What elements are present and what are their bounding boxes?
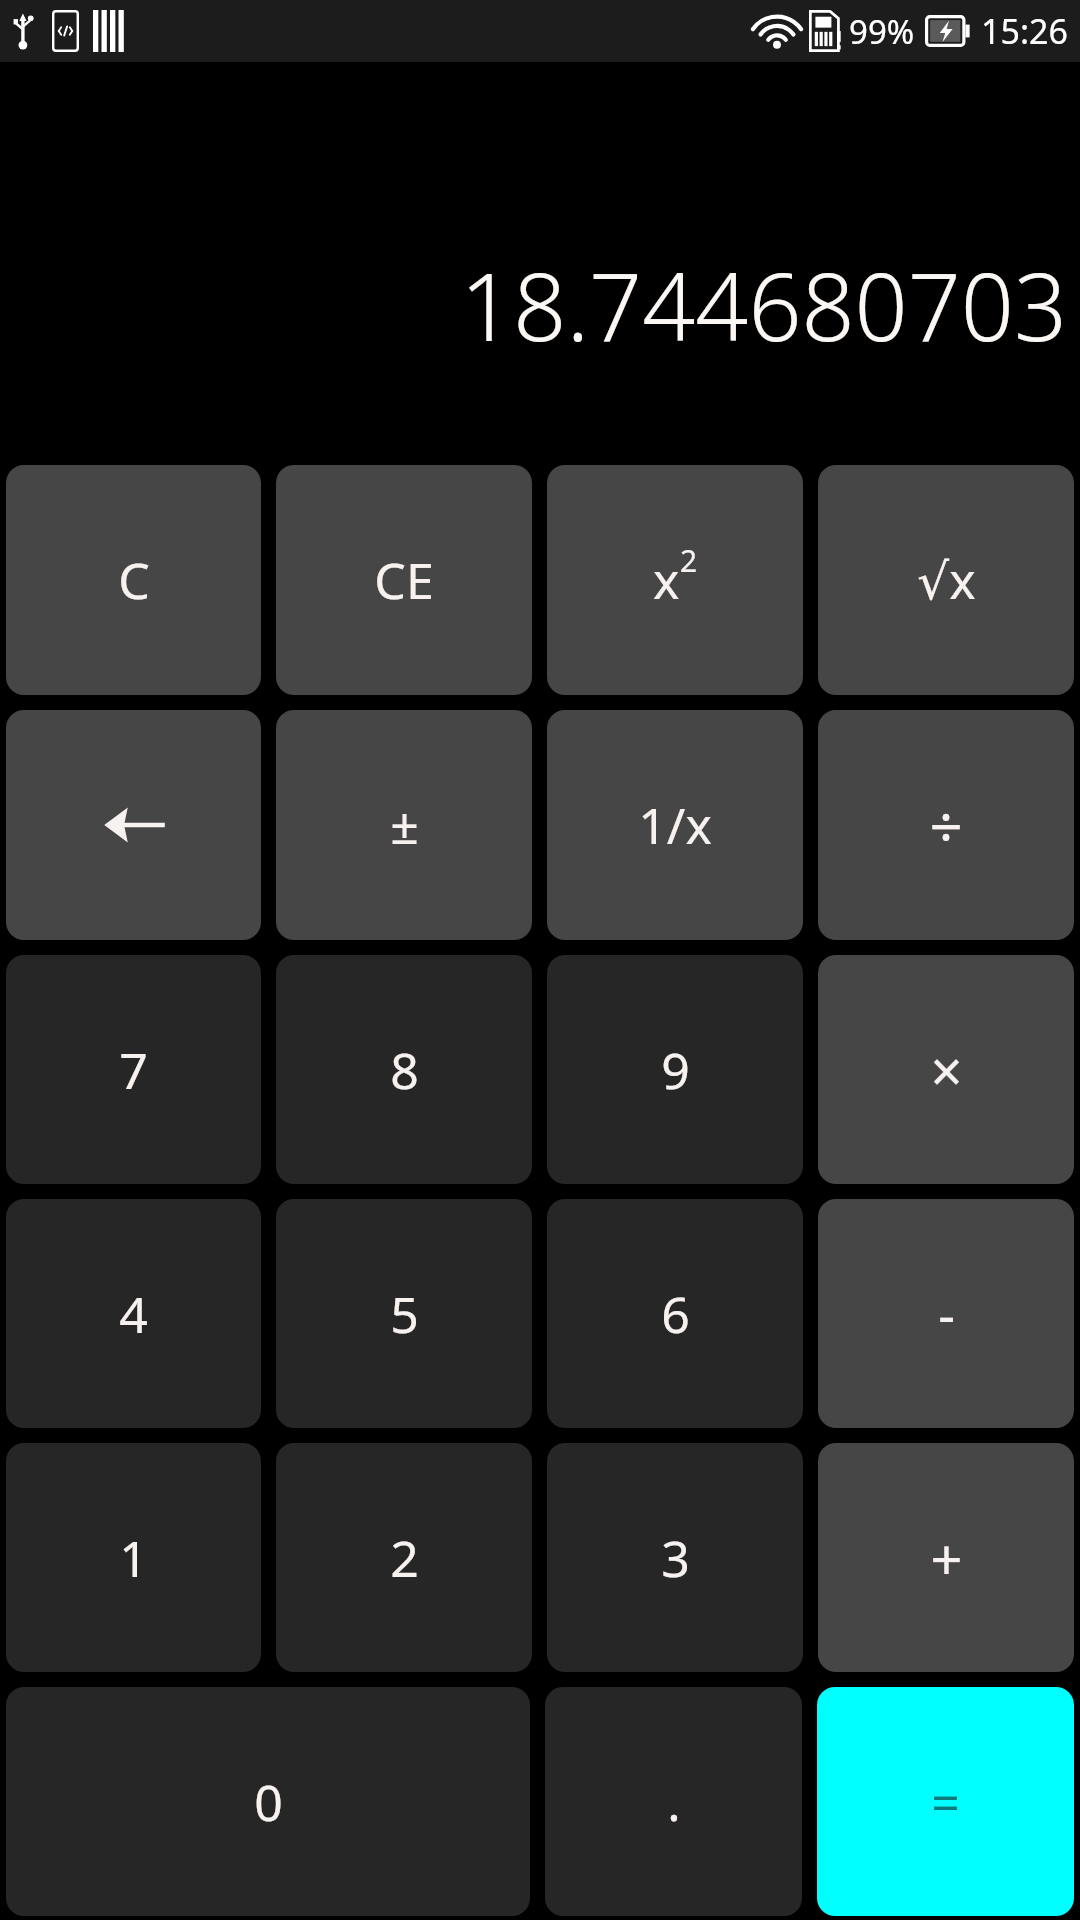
- button[interactable]: C: [6, 465, 261, 695]
- button[interactable]: ×: [818, 955, 1074, 1184]
- button[interactable]: =: [817, 1687, 1074, 1916]
- staticText: 1/x: [638, 791, 712, 859]
- staticText: 6: [661, 1280, 690, 1348]
- staticText: 18.744680703: [460, 242, 1067, 369]
- button[interactable]: ÷: [818, 710, 1074, 940]
- button[interactable]: 1/x: [547, 710, 803, 940]
- staticText: ×: [930, 1032, 963, 1108]
- button[interactable]: 5: [276, 1199, 532, 1428]
- staticText: 9: [661, 1036, 690, 1104]
- button[interactable]: .: [545, 1687, 802, 1916]
- button[interactable]: 9: [547, 955, 803, 1184]
- staticText: +: [930, 1520, 963, 1596]
- staticText: 2: [680, 540, 698, 581]
- staticText: -: [938, 1278, 955, 1349]
- button[interactable]: 3: [547, 1443, 803, 1672]
- staticText: 1: [119, 1524, 148, 1592]
- staticText: 5: [390, 1280, 419, 1348]
- button[interactable]: x squared: [547, 465, 803, 695]
- staticText: 4: [119, 1280, 148, 1348]
- staticText: 15:26: [981, 8, 1068, 54]
- button[interactable]: 4: [6, 1199, 261, 1428]
- button[interactable]: -: [818, 1199, 1074, 1428]
- staticText: ±: [390, 791, 419, 859]
- staticText: C: [118, 546, 150, 614]
- staticText: 3: [661, 1524, 690, 1592]
- button[interactable]: Backspace: [6, 710, 261, 940]
- staticText: 0: [254, 1768, 283, 1836]
- button[interactable]: √x: [818, 465, 1074, 695]
- button[interactable]: 1: [6, 1443, 261, 1672]
- staticText: ÷: [929, 786, 963, 865]
- button[interactable]: 8: [276, 955, 532, 1184]
- staticText: =: [931, 1768, 960, 1836]
- staticText: 8: [390, 1036, 419, 1104]
- staticText: √x: [917, 546, 976, 614]
- staticText: 99%: [849, 9, 915, 54]
- button[interactable]: 6: [547, 1199, 803, 1428]
- staticText: .: [667, 1768, 681, 1836]
- button[interactable]: ±: [276, 710, 532, 940]
- staticText: x: [653, 546, 680, 614]
- button[interactable]: +: [818, 1443, 1074, 1672]
- button[interactable]: 7: [6, 955, 261, 1184]
- staticText: CE: [374, 546, 434, 614]
- button[interactable]: CE: [276, 465, 532, 695]
- button[interactable]: 2: [276, 1443, 532, 1672]
- button[interactable]: 0: [6, 1687, 530, 1916]
- staticText: 2: [390, 1524, 419, 1592]
- staticText: 7: [119, 1036, 148, 1104]
